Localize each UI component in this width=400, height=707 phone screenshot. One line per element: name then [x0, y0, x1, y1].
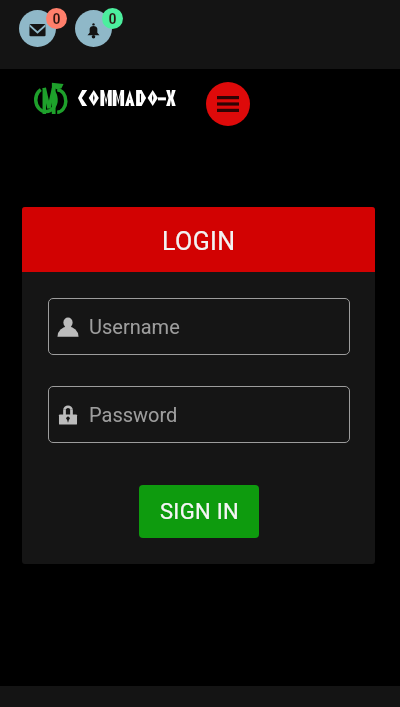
staticText: LOGIN	[162, 227, 236, 256]
staticText: SIGN IN	[160, 499, 239, 525]
button[interactable]: SIGN IN	[139, 485, 259, 538]
staticText: Password	[89, 403, 178, 426]
staticText: 0	[52, 11, 61, 27]
button[interactable]: Password	[48, 386, 350, 443]
staticText: Username	[89, 315, 180, 338]
button[interactable]: Open menu	[206, 82, 250, 126]
staticText: 0	[108, 11, 117, 27]
button[interactable]: Messages	[17, 6, 79, 56]
button[interactable]: Notifications	[73, 6, 135, 56]
button[interactable]: Username	[48, 298, 350, 355]
